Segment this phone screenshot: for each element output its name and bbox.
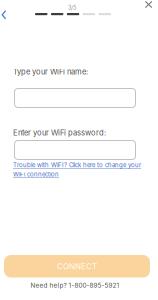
- staticText: Enter your WiFi password:: [13, 128, 106, 137]
- button[interactable]: Back: [0, 5, 12, 23]
- staticText: WiFi connection: [13, 171, 59, 178]
- staticText: CONNECT: [57, 261, 97, 271]
- button[interactable]: Close: [142, 0, 155, 11]
- staticText: 3/5: [68, 4, 76, 11]
- staticText: Trouble with WiFI? Click here to change …: [13, 161, 141, 169]
- button[interactable]: CONNECT: [4, 255, 150, 277]
- staticText: Need help? 1-800-895-5921: [30, 282, 119, 289]
- staticText: Type your WiFi name:: [13, 67, 88, 76]
- button[interactable]: Trouble with WiFI? Click here to change …: [13, 161, 143, 178]
